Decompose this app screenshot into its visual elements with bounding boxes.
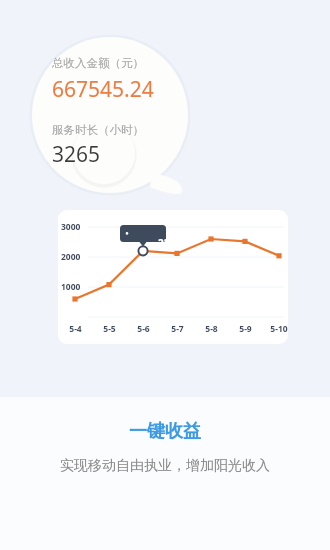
staticText: 5-6 [137,323,150,335]
staticText: 2204 [158,236,181,250]
staticText: 667545.24 [52,75,154,104]
staticText: 3265 [52,140,101,169]
staticText: 1000 [61,281,81,293]
staticText: 实现移动自由执业，增加阳光收入 [60,457,270,475]
staticText: 5-9 [239,323,252,335]
staticText: 服务时长（小时） [52,123,144,137]
staticText: 总收入金额（元） [52,56,144,70]
button[interactable]: 3000 [58,210,288,344]
staticText: 5-7 [171,323,184,335]
staticText: 5-4 [69,323,82,335]
staticText: 3000 [61,221,81,233]
staticText: 一键收益 [129,420,201,443]
staticText: 5-8 [205,323,218,335]
button[interactable]: 总收入金额（元） [52,56,154,169]
staticText: 5-5 [103,323,116,335]
staticText: 2000 [61,251,81,263]
staticText: 5-10 [270,323,288,335]
button[interactable]: 一键收益 [0,420,330,475]
